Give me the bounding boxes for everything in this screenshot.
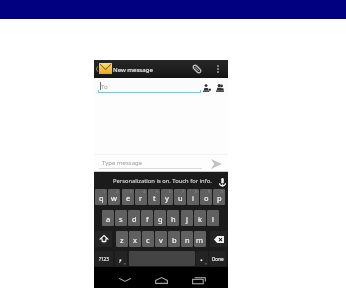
- staticText: h: [171, 214, 176, 224]
- staticText: j: [186, 214, 188, 224]
- staticText: u: [178, 193, 183, 203]
- button[interactable]: w: [108, 189, 120, 205]
- button[interactable]: Voice input: [217, 173, 226, 185]
- button[interactable]: m: [194, 231, 206, 247]
- button[interactable]: New message: [94, 60, 160, 78]
- staticText: 7: [182, 189, 185, 194]
- button[interactable]: g: [154, 210, 166, 226]
- staticText: r: [139, 193, 143, 203]
- button[interactable]: y: [161, 189, 173, 205]
- staticText: g: [158, 214, 163, 224]
- staticText: m: [196, 235, 204, 245]
- staticText: 3: [130, 189, 133, 194]
- staticText: t: [153, 193, 156, 203]
- staticText: Personalization is on. Touch for info.: [113, 177, 212, 185]
- button[interactable]: Send: [204, 155, 228, 171]
- staticText: k: [198, 214, 203, 224]
- staticText: 1: [103, 189, 106, 194]
- staticText: e: [126, 193, 131, 203]
- button[interactable]: t: [148, 189, 160, 205]
- staticText: y: [165, 193, 169, 203]
- button[interactable]: l: [207, 210, 219, 226]
- staticText: Done: [212, 256, 224, 262]
- button[interactable]: p: [213, 189, 225, 205]
- button[interactable]: v: [155, 231, 167, 247]
- button[interactable]: n: [181, 231, 193, 247]
- button[interactable]: x: [129, 231, 141, 247]
- button[interactable]: Done: [209, 251, 226, 266]
- staticText: i: [192, 193, 194, 203]
- staticText: 6: [169, 189, 172, 194]
- staticText: 4: [143, 189, 146, 194]
- staticText: n: [185, 235, 190, 245]
- button[interactable]: s: [115, 210, 127, 226]
- button[interactable]: h: [167, 210, 179, 226]
- staticText: o: [204, 193, 209, 203]
- button[interactable]: Attach: [188, 60, 206, 78]
- staticText: q: [99, 193, 104, 203]
- staticText: c: [146, 235, 150, 245]
- button[interactable]: Home: [153, 272, 169, 288]
- staticText: a: [106, 214, 111, 224]
- button[interactable]: Add recipient: [203, 84, 211, 92]
- button[interactable]: Contacts: [216, 84, 224, 92]
- button[interactable]: Recents: [191, 272, 207, 288]
- staticText: Type message: [102, 159, 143, 167]
- staticText: w: [111, 193, 117, 203]
- button[interactable]: More options: [212, 60, 223, 78]
- button[interactable]: j: [181, 210, 193, 226]
- staticText: 2: [116, 189, 119, 194]
- staticText: 9: [208, 189, 211, 194]
- button[interactable]: f: [141, 210, 153, 226]
- button[interactable]: z: [116, 231, 128, 247]
- button[interactable]: c: [142, 231, 154, 247]
- staticText: 5: [156, 189, 159, 194]
- staticText: s: [119, 214, 123, 224]
- button[interactable]: Back: [117, 272, 132, 288]
- button[interactable]: Personalization is on. Touch for info.: [94, 172, 228, 188]
- button[interactable]: k: [194, 210, 206, 226]
- staticText: d: [132, 214, 137, 224]
- button[interactable]: Shift: [95, 231, 112, 247]
- staticText: l: [212, 214, 214, 224]
- staticText: b: [172, 235, 177, 245]
- button[interactable]: e: [122, 189, 134, 205]
- staticText: To: [101, 82, 108, 90]
- staticText: 0: [221, 189, 224, 194]
- button[interactable]: u: [174, 189, 186, 205]
- staticText: 8: [195, 189, 198, 194]
- button[interactable]: o: [200, 189, 212, 205]
- button[interactable]: i: [187, 189, 199, 205]
- button[interactable]: Period: [196, 251, 208, 266]
- button[interactable]: Type message: [99, 155, 202, 171]
- button[interactable]: Symbols: [95, 251, 113, 266]
- staticText: New message: [113, 65, 153, 73]
- button[interactable]: a: [102, 210, 114, 226]
- staticText: ?123: [99, 256, 109, 262]
- staticText: f: [146, 214, 149, 224]
- staticText: z: [120, 235, 124, 245]
- button[interactable]: Comma: [115, 251, 127, 266]
- button[interactable]: b: [168, 231, 180, 247]
- staticText: x: [133, 235, 137, 245]
- button[interactable]: r: [135, 189, 147, 205]
- staticText: v: [159, 235, 163, 245]
- button[interactable]: Backspace: [210, 231, 227, 247]
- staticText: p: [217, 193, 222, 203]
- button[interactable]: To: [98, 78, 201, 94]
- button[interactable]: d: [128, 210, 140, 226]
- button[interactable]: q: [95, 189, 107, 205]
